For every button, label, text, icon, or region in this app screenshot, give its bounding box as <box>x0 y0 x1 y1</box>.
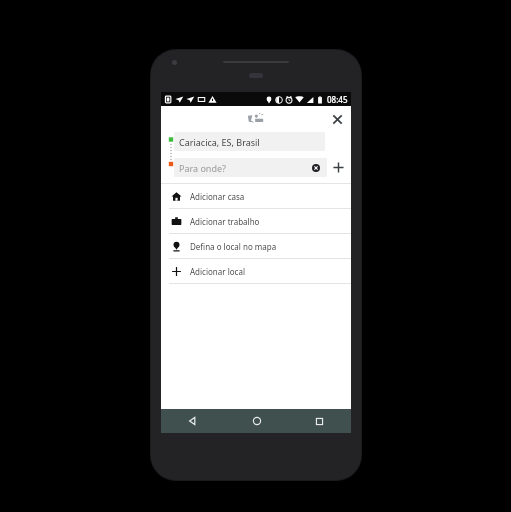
button[interactable]: Para onde? <box>174 158 327 177</box>
button[interactable]: Limpar <box>309 161 322 174</box>
button[interactable]: Adicionar local <box>161 259 351 283</box>
button[interactable]: Adicionar casa <box>161 184 351 208</box>
staticText: Cariacica, ES, Brasil <box>179 136 260 148</box>
button[interactable]: Adicionar parada <box>327 156 349 178</box>
staticText: Adicionar local <box>190 266 245 277</box>
staticText: Defina o local no mapa <box>190 241 277 252</box>
button[interactable]: Início <box>225 409 288 433</box>
button[interactable]: Cariacica, ES, Brasil <box>174 132 325 151</box>
staticText: Para onde? <box>179 162 309 174</box>
button[interactable]: Voltar <box>161 409 225 433</box>
button[interactable]: Recentes <box>288 409 351 433</box>
button[interactable]: Defina o local no mapa <box>161 234 351 258</box>
staticText: Adicionar casa <box>190 191 245 202</box>
button[interactable]: Fechar <box>328 110 346 128</box>
staticText: 08:45 <box>327 94 348 105</box>
button[interactable]: Adicionar trabalho <box>161 209 351 233</box>
staticText: Adicionar trabalho <box>190 216 260 227</box>
